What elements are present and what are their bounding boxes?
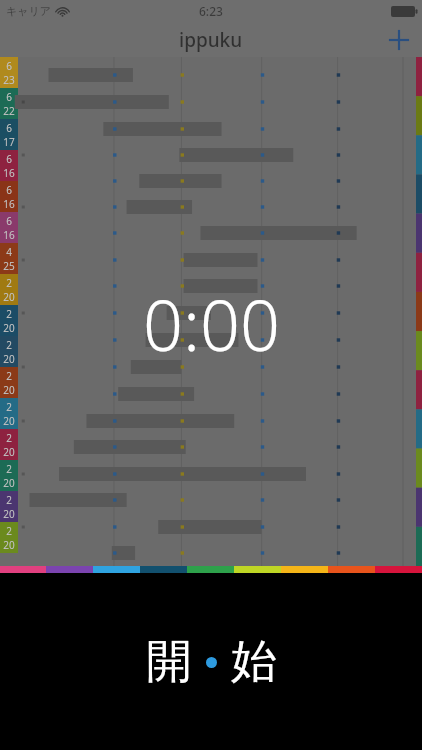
staticText: 16 xyxy=(3,197,15,211)
staticText: 20 xyxy=(3,414,15,428)
staticText: 2 xyxy=(6,369,12,383)
staticText: 2 xyxy=(6,493,12,507)
staticText: 2 xyxy=(6,276,12,290)
staticText: 20 xyxy=(3,507,15,521)
staticText: 20 xyxy=(3,476,15,490)
staticText: 16 xyxy=(3,166,15,180)
button[interactable]: 開 xyxy=(0,573,422,750)
staticText: 4 xyxy=(6,245,12,259)
staticText: 20 xyxy=(3,383,15,397)
staticText: 2 xyxy=(6,524,12,538)
staticText: 6 xyxy=(6,214,12,228)
staticText: 2 xyxy=(6,431,12,445)
staticText: 2 xyxy=(6,400,12,414)
staticText: 2 xyxy=(6,462,12,476)
staticText: 2 xyxy=(6,307,12,321)
staticText: キャリア xyxy=(6,4,52,18)
staticText: 6 xyxy=(6,59,12,73)
staticText: 22 xyxy=(3,104,15,118)
staticText: 始 xyxy=(231,633,277,691)
staticText: 20 xyxy=(3,538,15,552)
staticText: 0:00 xyxy=(143,276,280,371)
staticText: 17 xyxy=(3,135,15,149)
staticText: 25 xyxy=(3,259,15,273)
staticText: 23 xyxy=(3,73,15,87)
staticText: 6 xyxy=(6,183,12,197)
staticText: 6 xyxy=(6,152,12,166)
button[interactable]: Add xyxy=(376,22,422,57)
staticText: 6:23 xyxy=(199,3,223,19)
staticText: 6 xyxy=(6,121,12,135)
staticText: 開 xyxy=(146,633,192,691)
staticText: ippuku xyxy=(179,27,243,53)
staticText: 20 xyxy=(3,290,15,304)
staticText: 6 xyxy=(6,90,12,104)
staticText: 20 xyxy=(3,445,15,459)
staticText: 2 xyxy=(6,338,12,352)
staticText: 20 xyxy=(3,321,15,335)
staticText: 20 xyxy=(3,352,15,366)
staticText: 16 xyxy=(3,228,15,242)
